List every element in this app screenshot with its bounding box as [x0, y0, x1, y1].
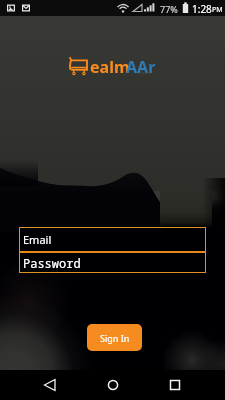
button[interactable]: Sign In: [87, 324, 142, 351]
staticText: AAr: [126, 56, 156, 78]
button[interactable]: Back: [35, 370, 65, 400]
button[interactable]: Home: [98, 370, 128, 400]
staticText: Email: [23, 232, 52, 247]
button[interactable]: Email: [19, 227, 206, 251]
button[interactable]: Password: [19, 253, 206, 273]
staticText: ealm: [90, 56, 130, 78]
staticText: 77%: [160, 3, 178, 15]
button[interactable]: Recent apps: [160, 370, 190, 400]
staticText: PM: [212, 5, 223, 15]
staticText: deals: [140, 70, 150, 75]
staticText: Password: [23, 255, 81, 271]
staticText: Sign In: [100, 332, 130, 344]
staticText: 1:28: [192, 2, 212, 16]
